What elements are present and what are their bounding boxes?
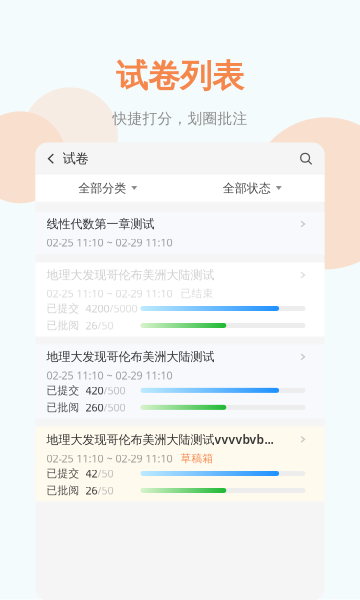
- staticText: 地理大发现哥伦布美洲大陆测试: [46, 349, 214, 364]
- staticText: 线性代数第一章测试: [46, 217, 154, 231]
- staticText: 草稿箱: [180, 452, 213, 465]
- staticText: /50: [97, 318, 113, 333]
- staticText: 02-25 11:10 ~ 02-29 11:10: [46, 368, 172, 382]
- staticText: 已结束: [180, 287, 213, 300]
- button[interactable]: 全部状态: [180, 175, 324, 202]
- staticText: 26: [85, 483, 97, 498]
- button[interactable]: 线性代数第一章测试: [35, 212, 324, 255]
- button[interactable]: 地理大发现哥伦布美洲大陆测试vvvvbvb...: [35, 426, 324, 501]
- staticText: /500: [103, 400, 125, 414]
- staticText: 26: [85, 318, 97, 333]
- staticText: 260: [85, 400, 103, 414]
- staticText: 地理大发现哥伦布美洲大陆测试: [46, 268, 214, 282]
- staticText: 已提交: [46, 467, 79, 480]
- staticText: /5000: [109, 301, 137, 316]
- staticText: 02-25 11:10 ~ 02-29 11:10: [46, 286, 172, 300]
- staticText: 已批阅: [46, 484, 79, 497]
- staticText: 4200: [85, 301, 109, 316]
- staticText: /50: [97, 466, 113, 481]
- button[interactable]: 全部分类: [35, 175, 180, 202]
- button[interactable]: 地理大发现哥伦布美洲大陆测试: [35, 263, 324, 336]
- staticText: /500: [103, 383, 125, 397]
- staticText: 全部分类: [78, 181, 126, 195]
- staticText: 已批阅: [46, 401, 79, 414]
- staticText: 已提交: [46, 384, 79, 397]
- staticText: 已提交: [46, 302, 79, 315]
- button[interactable]: 地理大发现哥伦布美洲大陆测试: [35, 344, 324, 418]
- button[interactable]: Search: [287, 143, 324, 175]
- staticText: 全部状态: [223, 181, 271, 195]
- staticText: /50: [97, 483, 113, 498]
- staticText: 02-25 11:10 ~ 02-29 11:10: [46, 451, 172, 465]
- staticText: 已批阅: [46, 319, 79, 332]
- staticText: 地理大发现哥伦布美洲大陆测试vvvvbvb...: [46, 431, 273, 447]
- staticText: 快捷打分，划圈批注: [112, 110, 247, 128]
- button[interactable]: 试卷: [35, 143, 98, 175]
- staticText: 02-25 11:10 ~ 02-29 11:10: [46, 235, 172, 250]
- staticText: 试卷: [62, 150, 88, 167]
- staticText: 试卷列表: [116, 56, 244, 96]
- staticText: 42: [85, 466, 97, 481]
- staticText: 420: [85, 383, 103, 397]
